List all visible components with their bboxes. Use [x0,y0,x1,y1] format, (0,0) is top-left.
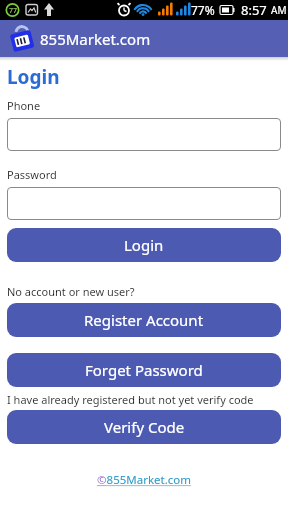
button[interactable] [7,118,281,151]
staticText: Verify Code [104,417,185,437]
staticText: 77 [9,6,18,16]
staticText: Login [7,64,60,90]
button[interactable]: ©855Market.com [97,472,192,488]
staticText: Phone [7,98,41,113]
staticText: 855Market.com [40,29,151,49]
button[interactable]: Register Account [7,303,281,337]
staticText: 77% [191,2,215,18]
button[interactable]: Login [7,228,281,262]
staticText: Password [7,167,57,182]
button[interactable] [7,187,281,220]
button[interactable]: Verify Code [7,410,281,444]
staticText: AM [271,3,287,17]
staticText: Register Account [84,310,204,330]
staticText: No account or new user? [7,284,135,299]
staticText: Login [124,235,164,255]
button[interactable]: Forget Password [7,353,281,387]
staticText: Forget Password [85,360,203,380]
staticText: I have already registered but not yet ve… [7,392,254,407]
staticText: 8:57 [241,1,271,19]
